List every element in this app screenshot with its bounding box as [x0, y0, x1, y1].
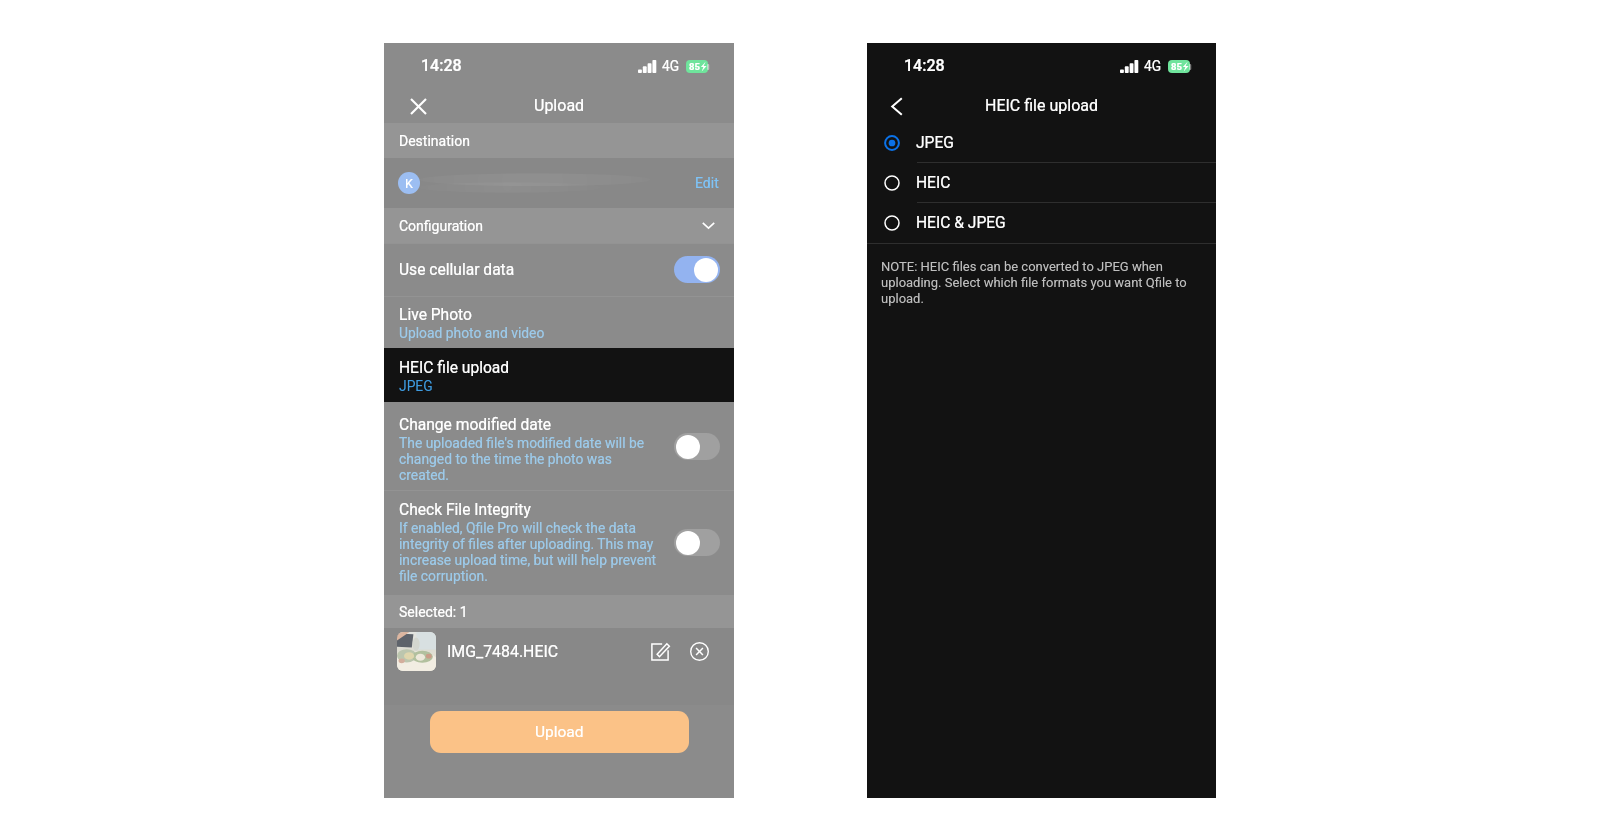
button[interactable]: Check File Integrity [674, 529, 720, 556]
button[interactable]: HEIC [867, 163, 1216, 203]
button[interactable]: Change modified date [384, 402, 734, 490]
button[interactable]: Close [403, 91, 433, 121]
button[interactable]: Use cellular data [384, 243, 734, 296]
staticText: 14:28 [421, 56, 462, 75]
button[interactable]: Back [882, 91, 912, 121]
staticText: Check File Integrity [399, 501, 531, 519]
button[interactable]: Upload [430, 711, 689, 753]
staticText: The uploaded file's modified date will b… [399, 435, 658, 483]
button[interactable]: Rename [650, 642, 669, 661]
staticText: Use cellular data [399, 261, 515, 279]
staticText: HEIC file upload [399, 359, 510, 377]
button[interactable]: Destination [384, 123, 734, 158]
button[interactable]: Live Photo [384, 296, 734, 348]
staticText: Live Photo [399, 306, 472, 324]
staticText: IMG_7484.HEIC [447, 642, 559, 661]
button[interactable]: IMG_7484.HEIC [384, 628, 734, 705]
button[interactable]: Remove [690, 642, 709, 661]
staticText: 85 [689, 61, 700, 72]
staticText: NOTE: HEIC files can be converted to JPE… [881, 259, 1194, 306]
staticText: Change modified date [399, 416, 552, 434]
button[interactable]: JPEG [867, 123, 1216, 163]
staticText: Upload [534, 96, 585, 115]
staticText: 4G [662, 58, 680, 74]
button[interactable]: Configuration [384, 208, 734, 243]
staticText: HEIC & JPEG [916, 214, 1006, 232]
staticText: Upload [535, 723, 584, 741]
staticText: Destination [399, 133, 470, 149]
staticText: HEIC [916, 174, 951, 192]
staticText: Selected: 1 [399, 604, 468, 620]
staticText: JPEG [399, 378, 433, 394]
button[interactable]: K [384, 158, 734, 208]
button[interactable]: HEIC & JPEG [867, 203, 1216, 243]
staticText: 85 [1171, 61, 1182, 72]
staticText: K [405, 176, 413, 191]
staticText: Configuration [399, 218, 483, 234]
button[interactable]: HEIC file upload [384, 348, 734, 402]
staticText: JPEG [916, 134, 954, 152]
staticText: Upload photo and video [399, 325, 545, 341]
staticText: 14:28 [904, 56, 945, 75]
staticText: HEIC file upload [985, 96, 1098, 115]
button[interactable]: Check File Integrity [384, 490, 734, 595]
staticText: If enabled, Qfile Pro will check the dat… [399, 520, 658, 584]
button[interactable]: Edit [695, 175, 719, 191]
button[interactable]: Use cellular data [674, 256, 720, 283]
button[interactable]: Selected: 1 [384, 595, 734, 628]
button[interactable]: Change modified date [674, 433, 720, 460]
staticText: 4G [1144, 58, 1162, 74]
